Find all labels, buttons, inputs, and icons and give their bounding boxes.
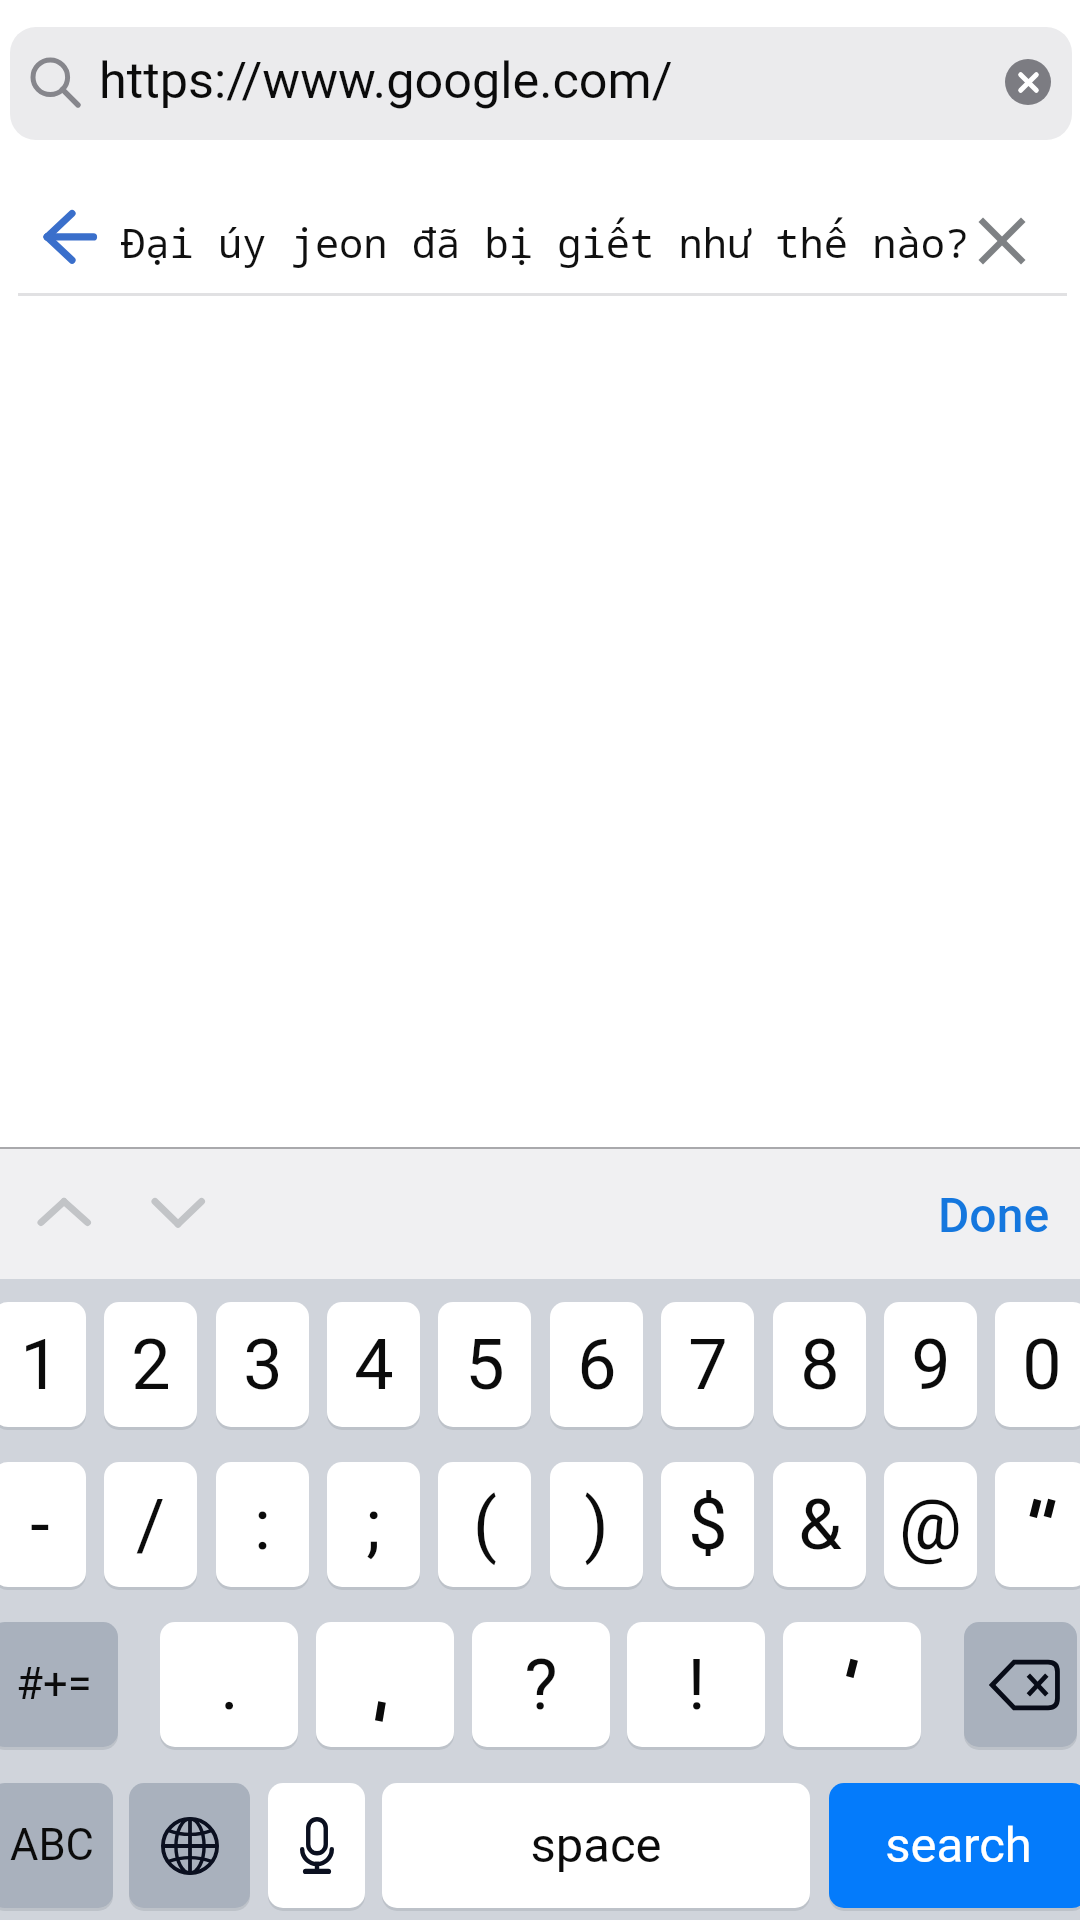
staticText: 1 xyxy=(20,1324,60,1406)
button[interactable]: 1 xyxy=(0,1302,86,1427)
staticText: 5 xyxy=(465,1324,505,1406)
button[interactable]: mic xyxy=(268,1783,365,1908)
button[interactable]: / xyxy=(104,1462,197,1587)
staticText: : xyxy=(254,1484,271,1566)
staticText: & xyxy=(798,1484,842,1566)
button[interactable]: ) xyxy=(550,1462,643,1587)
button[interactable]: @ xyxy=(884,1462,977,1587)
button[interactable]: Done xyxy=(924,1173,1064,1257)
button[interactable]: $ xyxy=(661,1462,754,1587)
button[interactable]: ABC xyxy=(0,1783,113,1908)
button[interactable]: space xyxy=(382,1783,810,1908)
button[interactable]: Close find bar xyxy=(977,216,1027,266)
button[interactable]: & xyxy=(773,1462,866,1587)
button[interactable]: globe xyxy=(129,1783,250,1908)
staticText: 8 xyxy=(800,1324,840,1406)
button[interactable]: 8 xyxy=(773,1302,866,1427)
button[interactable]: 9 xyxy=(884,1302,977,1427)
staticText: ; xyxy=(366,1484,381,1566)
button[interactable]: 2 xyxy=(104,1302,197,1427)
staticText: Đại úy jeon đã bị giết như thế nào? xyxy=(121,215,970,270)
staticText: 9 xyxy=(911,1324,951,1406)
button[interactable]: : xyxy=(216,1462,309,1587)
staticText: 6 xyxy=(577,1324,617,1406)
staticText: 7 xyxy=(688,1324,728,1406)
staticText: ? xyxy=(524,1644,558,1726)
staticText: ABC xyxy=(10,1820,94,1871)
button[interactable]: 4 xyxy=(327,1302,420,1427)
button[interactable]: Previous match xyxy=(20,1180,108,1244)
staticText: 0 xyxy=(1022,1324,1062,1406)
staticText: https://www.google.com/ xyxy=(99,51,673,110)
staticText: ) xyxy=(584,1484,609,1566)
button[interactable]: 7 xyxy=(661,1302,754,1427)
button[interactable]: search xyxy=(829,1783,1080,1908)
staticText: @ xyxy=(899,1484,962,1566)
button[interactable]: squote xyxy=(783,1622,921,1747)
button[interactable]: ; xyxy=(327,1462,420,1587)
staticText: . xyxy=(220,1644,239,1726)
staticText: #+= xyxy=(16,1659,92,1710)
staticText: - xyxy=(30,1484,50,1566)
button[interactable]: Back xyxy=(42,208,102,268)
button[interactable]: dquote xyxy=(995,1462,1080,1587)
staticText: $ xyxy=(688,1484,728,1566)
button[interactable]: 3 xyxy=(216,1302,309,1427)
button[interactable]: 0 xyxy=(995,1302,1080,1427)
button[interactable]: 6 xyxy=(550,1302,643,1427)
button[interactable]: - xyxy=(0,1462,86,1587)
button[interactable]: ! xyxy=(627,1622,765,1747)
button[interactable]: Clear address xyxy=(1005,59,1051,105)
staticText: 2 xyxy=(131,1324,171,1406)
button[interactable]: . xyxy=(160,1622,298,1747)
staticText: / xyxy=(136,1484,165,1566)
button[interactable]: comma xyxy=(316,1622,454,1747)
button[interactable]: Next match xyxy=(134,1180,222,1244)
staticText: search xyxy=(885,1817,1032,1874)
staticText: space xyxy=(530,1817,662,1874)
button[interactable]: ? xyxy=(472,1622,610,1747)
button[interactable]: #+= xyxy=(0,1622,118,1747)
button[interactable]: backspace xyxy=(964,1622,1077,1747)
button[interactable]: ( xyxy=(438,1462,531,1587)
staticText: ! xyxy=(687,1644,706,1726)
staticText: 3 xyxy=(243,1324,283,1406)
staticText: ( xyxy=(473,1484,497,1566)
staticText: 4 xyxy=(354,1324,394,1406)
staticText: Done xyxy=(938,1187,1050,1243)
button[interactable]: 5 xyxy=(438,1302,531,1427)
button[interactable]: https://www.google.com/ xyxy=(10,27,1072,140)
